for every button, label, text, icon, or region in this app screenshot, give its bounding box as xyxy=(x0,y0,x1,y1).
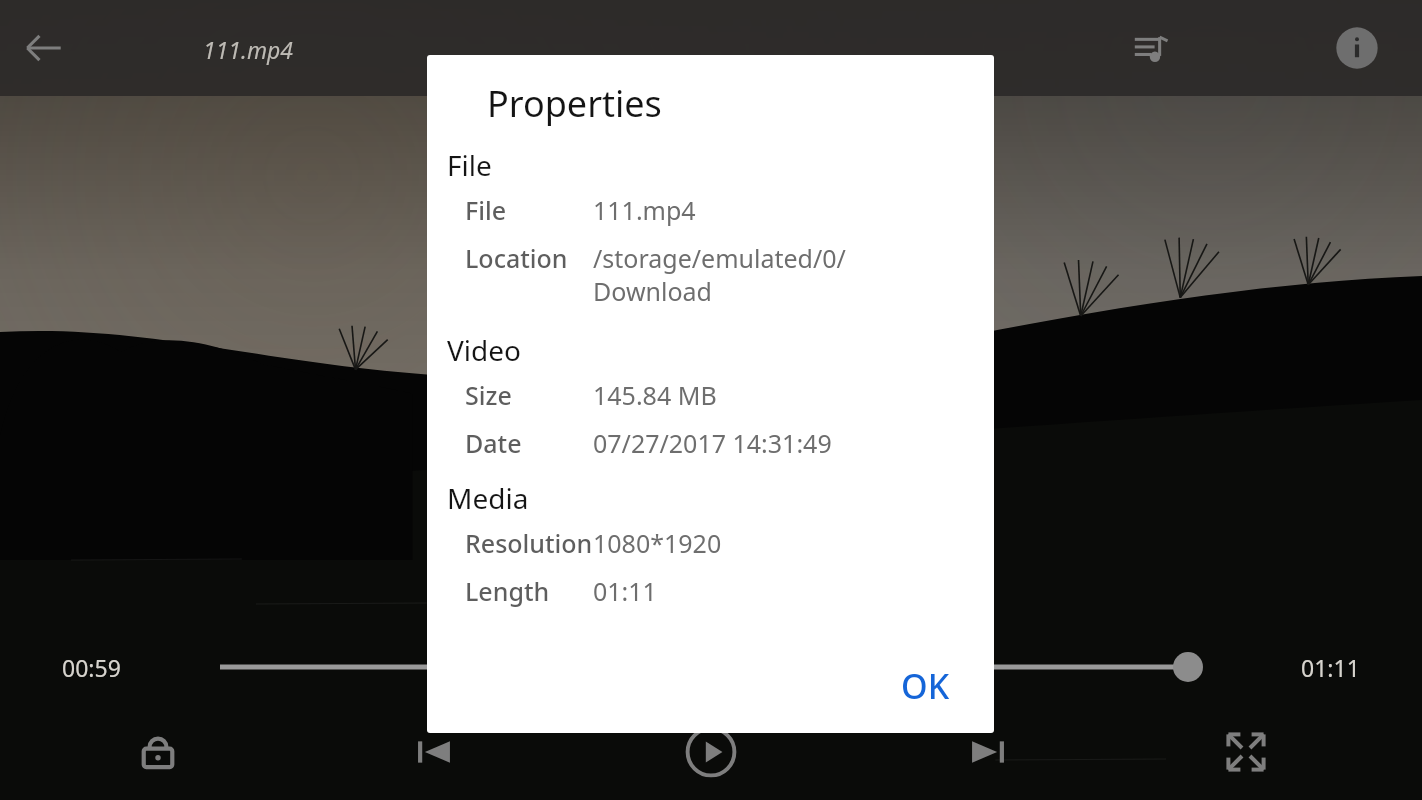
staticText: Properties xyxy=(487,79,662,128)
staticText: 111.mp4 xyxy=(593,193,696,227)
button[interactable]: Back xyxy=(14,18,74,78)
button[interactable]: Next xyxy=(956,720,1020,784)
staticText: File xyxy=(465,193,593,227)
staticText: 111.mp4 xyxy=(203,34,294,65)
staticText: Video xyxy=(447,331,521,369)
staticText: 145.84 MB xyxy=(593,378,717,412)
button[interactable]: Seek bar xyxy=(220,649,1200,685)
button[interactable]: Playlist xyxy=(1122,19,1180,77)
staticText: 00:59 xyxy=(62,652,121,683)
button[interactable]: Play xyxy=(673,714,749,790)
button[interactable]: Info xyxy=(1328,19,1386,77)
staticText: Media xyxy=(447,479,529,517)
staticText: OK xyxy=(901,663,950,709)
staticText: Location xyxy=(465,241,593,275)
button[interactable]: Previous xyxy=(402,720,466,784)
staticText: Resolution xyxy=(465,526,593,560)
staticText: Length xyxy=(465,574,593,608)
staticText: 01:11 xyxy=(1301,652,1360,683)
staticText: 01:11 xyxy=(593,574,657,608)
staticText: File xyxy=(447,146,492,184)
staticText: 07/27/2017 14:31:49 xyxy=(593,426,832,460)
button[interactable]: OK xyxy=(889,657,962,715)
staticText: Date xyxy=(465,426,593,460)
staticText: /storage/emulated/0/ Download xyxy=(593,241,846,308)
staticText: Size xyxy=(465,378,593,412)
button[interactable]: Fullscreen xyxy=(1215,721,1277,783)
button[interactable]: Lock screen xyxy=(127,721,189,783)
staticText: 1080*1920 xyxy=(593,526,722,560)
